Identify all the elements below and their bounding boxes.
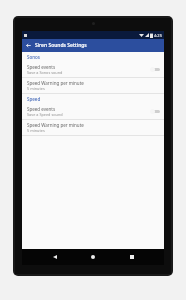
button[interactable]: Recent apps — [126, 251, 138, 263]
staticText: Save a Sonos sound — [27, 70, 63, 75]
button[interactable]: Toggle — [150, 108, 160, 115]
button[interactable]: Speed events — [22, 104, 164, 119]
button[interactable]: Speed Warning per minute — [22, 78, 164, 93]
staticText: Save a Speed sound — [27, 112, 63, 117]
button[interactable]: Navigate up — [22, 39, 35, 52]
button[interactable]: Speed Warning per minute — [22, 120, 164, 135]
button[interactable]: Back — [49, 251, 61, 263]
button[interactable]: Toggle — [150, 66, 160, 73]
staticText: Speed events — [27, 64, 56, 70]
staticText: Speed Warning per minute — [27, 80, 84, 86]
button[interactable]: Home — [87, 251, 99, 263]
staticText: Speed — [27, 96, 41, 102]
button[interactable]: Speed events — [22, 62, 164, 77]
staticText: Speed Warning per minute — [27, 122, 84, 128]
staticText: 5 minutes — [27, 128, 45, 133]
staticText: Speed events — [27, 106, 56, 112]
staticText: 4:25 — [154, 33, 162, 38]
staticText: 5 minutes — [27, 86, 45, 91]
staticText: Siren Sounds Settings — [35, 42, 87, 49]
staticText: Sonos — [27, 54, 40, 60]
